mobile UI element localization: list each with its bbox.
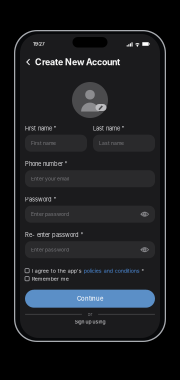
staticText: * bbox=[54, 196, 57, 203]
button[interactable]: First name bbox=[25, 135, 87, 152]
staticText: Enter password bbox=[31, 247, 69, 253]
staticText: Last name bbox=[99, 140, 124, 146]
staticText: Create New Account bbox=[35, 57, 120, 67]
staticText: * bbox=[65, 160, 68, 167]
button[interactable]: Remember me bbox=[25, 276, 155, 282]
staticText: * bbox=[54, 125, 57, 132]
staticText: Last name bbox=[93, 125, 120, 132]
button[interactable]: Last name bbox=[93, 135, 155, 152]
staticText: First name bbox=[31, 140, 56, 146]
staticText: First name bbox=[25, 125, 52, 132]
button[interactable]: Enter password bbox=[25, 241, 155, 258]
staticText: * bbox=[81, 231, 84, 238]
button[interactable]: Sign up using bbox=[25, 319, 155, 325]
staticText: Password bbox=[25, 196, 52, 203]
staticText: Phone number bbox=[25, 160, 63, 167]
staticText: I agree to the app's bbox=[32, 267, 82, 274]
staticText: * bbox=[141, 267, 144, 274]
staticText: Remember me bbox=[32, 275, 69, 282]
button[interactable]: I agree to the app's bbox=[25, 268, 155, 274]
staticText: 19:27 bbox=[33, 41, 45, 47]
staticText: or bbox=[87, 311, 92, 317]
staticText: Re- enter password bbox=[25, 231, 79, 238]
staticText: Sign up using bbox=[74, 319, 105, 325]
staticText: Enter your email bbox=[31, 176, 69, 182]
button[interactable]: Enter your email bbox=[25, 170, 155, 187]
button[interactable]: Enter password bbox=[25, 206, 155, 223]
staticText: Enter password bbox=[31, 211, 69, 217]
button[interactable]: Create New Account bbox=[20, 54, 124, 70]
button[interactable]: Continue bbox=[25, 290, 155, 308]
staticText: policies and conditions bbox=[84, 267, 140, 274]
staticText: Continue bbox=[77, 295, 103, 302]
staticText: * bbox=[122, 125, 125, 132]
button[interactable]: Edit profile photo bbox=[72, 82, 108, 118]
